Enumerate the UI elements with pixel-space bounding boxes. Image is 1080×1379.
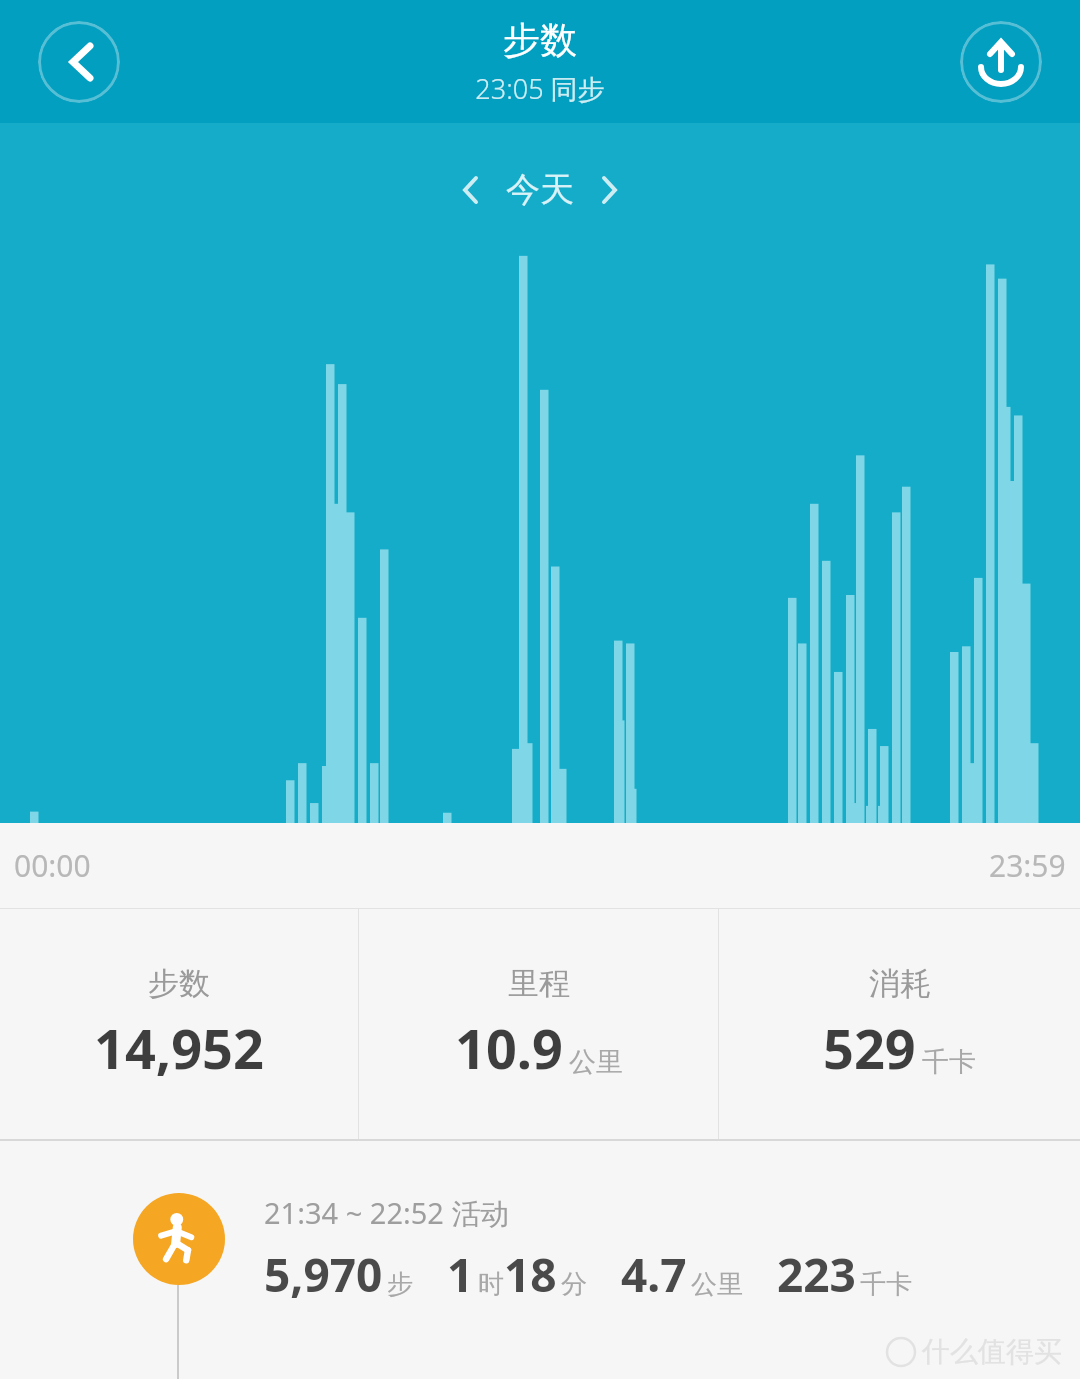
staticText: 223 <box>777 1243 856 1306</box>
staticText: 里程 <box>508 964 570 1003</box>
button[interactable]: 步数 <box>0 909 358 1139</box>
staticText: 今天 <box>506 168 574 211</box>
staticText: 14,952 <box>94 1011 264 1085</box>
staticText: 1 <box>447 1243 474 1306</box>
staticText: 分 <box>561 1268 587 1301</box>
staticText: 10.9 <box>455 1011 563 1085</box>
button[interactable]: 21:34 ~ 22:52 活动 <box>0 1141 1080 1379</box>
staticText: 什么值得买 <box>922 1334 1062 1369</box>
staticText: 千卡 <box>860 1268 912 1301</box>
staticText: 消耗 <box>869 964 931 1003</box>
staticText: 18 <box>504 1243 557 1306</box>
staticText: 4.7 <box>621 1243 687 1306</box>
button[interactable]: Back <box>38 21 120 103</box>
staticText: 步 <box>387 1268 413 1301</box>
staticText: 时 <box>478 1268 504 1301</box>
staticText: 步数 <box>148 964 210 1003</box>
staticText: 00:00 <box>14 845 91 886</box>
staticText: 5,970 <box>264 1243 383 1306</box>
button[interactable]: Share <box>960 21 1042 103</box>
staticText: 千卡 <box>922 1045 976 1079</box>
button[interactable]: 今天 <box>456 168 624 211</box>
staticText: 公里 <box>691 1268 743 1301</box>
button[interactable]: 消耗 <box>719 909 1080 1139</box>
staticText: 步数 <box>503 17 577 64</box>
staticText: 23:05 同步 <box>475 70 605 107</box>
staticText: 529 <box>823 1011 916 1085</box>
button[interactable]: 里程 <box>359 909 718 1139</box>
staticText: 21:34 ~ 22:52 活动 <box>264 1193 510 1233</box>
staticText: 公里 <box>569 1045 623 1079</box>
staticText: 23:59 <box>989 845 1066 886</box>
